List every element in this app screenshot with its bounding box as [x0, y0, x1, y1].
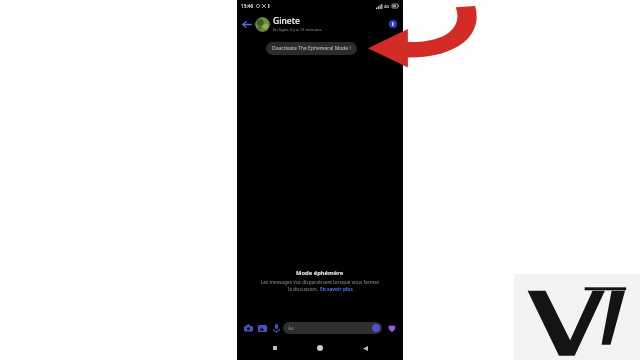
staticText: i	[392, 21, 394, 28]
staticText: Mode éphémère	[296, 269, 344, 277]
button[interactable]: Aa	[283, 322, 382, 334]
button[interactable]: En savoir plus	[320, 286, 353, 293]
button[interactable]: Camera	[241, 321, 255, 335]
staticText: En ligne il y a 12 minutes	[273, 27, 322, 33]
button[interactable]: Recent apps	[268, 341, 282, 355]
button[interactable]: Back	[237, 13, 255, 35]
staticText: Deactivate The Ephemeral Mode !	[272, 45, 351, 52]
staticText: Les messages vus disparaissent lorsque v…	[245, 279, 395, 286]
staticText: 4G	[384, 4, 390, 9]
staticText: Aa	[288, 325, 294, 332]
button[interactable]: Home	[313, 341, 327, 355]
staticText: En savoir plus	[320, 286, 353, 293]
button[interactable]: Conversation info	[383, 13, 403, 35]
button[interactable]: Ginete	[255, 13, 383, 35]
staticText: la discussion.	[288, 286, 320, 293]
staticText: Ginete	[273, 15, 300, 27]
staticText: 15:46	[241, 3, 254, 10]
button[interactable]: Stickers	[372, 324, 380, 332]
button[interactable]: Voice message	[269, 321, 283, 335]
button[interactable]: Send like	[385, 321, 399, 335]
button[interactable]: Deactivate The Ephemeral Mode !	[266, 42, 357, 55]
button[interactable]: Back	[358, 341, 372, 355]
button[interactable]: Photo gallery	[255, 321, 269, 335]
